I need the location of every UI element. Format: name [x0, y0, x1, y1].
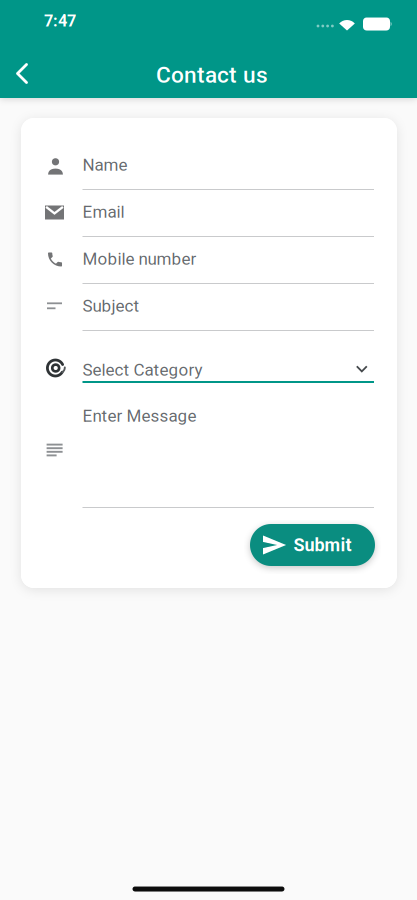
staticText: Email	[82, 202, 124, 222]
staticText: Name	[82, 155, 127, 175]
button[interactable]: Enter Message	[82, 392, 374, 508]
staticText: Select Category	[82, 360, 202, 380]
button[interactable]: Email	[82, 189, 374, 237]
button[interactable]: Mobile number	[82, 236, 374, 284]
button[interactable]: Subject	[82, 283, 374, 331]
staticText: Contact us	[156, 62, 268, 88]
staticText: Mobile number	[82, 249, 196, 269]
button[interactable]: Name	[82, 142, 374, 190]
staticText: 7:47	[44, 11, 76, 30]
button[interactable]: Submit	[250, 524, 375, 566]
staticText: Submit	[293, 534, 351, 556]
button[interactable]	[0, 51, 44, 95]
staticText: Enter Message	[82, 406, 196, 426]
button[interactable]: Select Category	[82, 339, 374, 383]
staticText: Subject	[82, 296, 139, 316]
